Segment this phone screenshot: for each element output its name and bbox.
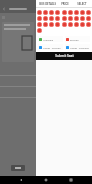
staticText: BUS DETAILS bbox=[39, 2, 56, 6]
staticText: Available bbox=[43, 38, 54, 41]
button[interactable]: Seat bbox=[74, 22, 79, 27]
button[interactable]: Seat bbox=[86, 22, 91, 27]
button[interactable]: Seat bbox=[37, 16, 42, 21]
button[interactable]: Seat bbox=[74, 16, 79, 21]
button[interactable]: Booked bbox=[65, 36, 90, 42]
button[interactable]: Seat bbox=[43, 16, 48, 21]
button[interactable]: Seat bbox=[68, 16, 73, 21]
button[interactable]: Seat bbox=[49, 16, 54, 21]
button[interactable]: Back bbox=[17, 176, 25, 184]
staticText: Ladies · booked bbox=[43, 46, 61, 49]
button[interactable]: Submit Seat bbox=[36, 52, 92, 60]
button[interactable]: Seat bbox=[86, 16, 91, 21]
button[interactable] bbox=[0, 87, 36, 98]
button[interactable]: Seat bbox=[62, 22, 67, 27]
button[interactable]: Seat bbox=[43, 22, 48, 27]
button[interactable]: Seat bbox=[68, 10, 73, 15]
staticText: Submit Seat bbox=[55, 54, 74, 58]
button[interactable]: PRICE bbox=[58, 0, 72, 7]
button[interactable]: Seat bbox=[49, 10, 54, 15]
button[interactable] bbox=[11, 165, 25, 171]
button[interactable]: Home bbox=[42, 176, 50, 184]
button[interactable]: Seat bbox=[43, 10, 48, 15]
button[interactable]: Ladies · booked bbox=[38, 44, 63, 50]
button[interactable] bbox=[0, 65, 36, 76]
button[interactable]: Seat bbox=[55, 22, 60, 27]
button[interactable]: Available bbox=[38, 36, 63, 42]
staticText: PRICE bbox=[61, 2, 69, 6]
button[interactable]: Seat bbox=[37, 28, 42, 33]
button[interactable]: Ladies · available bbox=[65, 44, 90, 50]
button[interactable]: SELECT bbox=[72, 0, 91, 7]
button[interactable]: Seat bbox=[80, 22, 85, 27]
button[interactable]: Back bbox=[2, 7, 6, 11]
button[interactable]: Seat bbox=[37, 10, 42, 15]
staticText: SELECT bbox=[77, 2, 87, 6]
button[interactable]: Seat bbox=[80, 16, 85, 21]
button[interactable]: Seat bbox=[55, 16, 60, 21]
button[interactable]: Seat bbox=[74, 10, 79, 15]
button[interactable]: Seat bbox=[80, 10, 85, 15]
button[interactable]: BUS DETAILS bbox=[37, 0, 58, 7]
button[interactable]: Recent apps bbox=[67, 176, 75, 184]
staticText: Booked bbox=[70, 38, 79, 41]
button[interactable]: Seat bbox=[62, 10, 67, 15]
staticText: Ladies · available bbox=[70, 46, 89, 49]
button[interactable]: Seat bbox=[55, 10, 60, 15]
button[interactable] bbox=[2, 22, 34, 62]
button[interactable]: Seat bbox=[49, 22, 54, 27]
button[interactable] bbox=[0, 76, 36, 87]
button[interactable]: Seat bbox=[86, 10, 91, 15]
button[interactable]: Seat bbox=[37, 22, 42, 27]
button[interactable]: Seat bbox=[62, 16, 67, 21]
button[interactable]: Seat bbox=[68, 22, 73, 27]
